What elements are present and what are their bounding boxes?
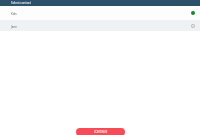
button[interactable]: Jane (0, 20, 200, 31)
button[interactable]: Select contact (0, 0, 200, 6)
staticText: CONTINUE (94, 130, 108, 134)
staticText: Select contact (11, 1, 31, 5)
staticText: Jane (11, 25, 191, 29)
button[interactable]: Kids (0, 6, 200, 20)
other: Select (191, 24, 195, 28)
button[interactable]: CONTINUE (76, 128, 125, 135)
staticText: Kids (11, 12, 191, 16)
